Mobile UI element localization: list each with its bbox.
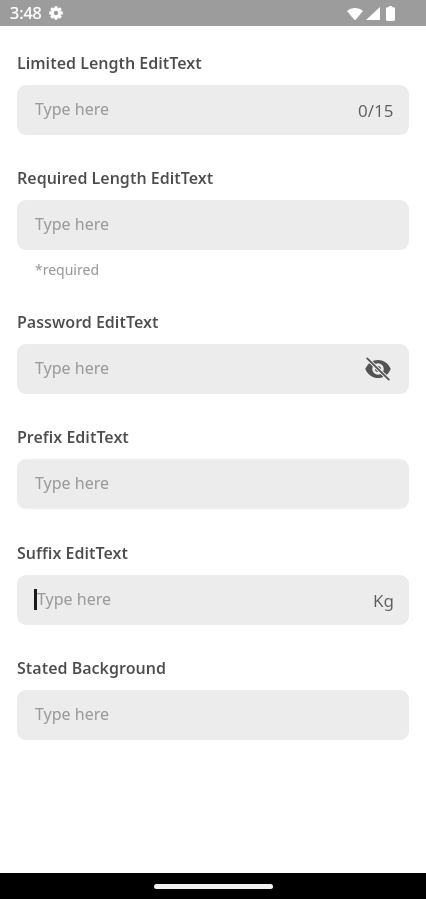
staticText: Required Length EditText (17, 167, 214, 189)
staticText: Stated Background (17, 657, 166, 679)
staticText: Type here (35, 357, 109, 379)
staticText: Type here (37, 588, 111, 610)
button[interactable]: Type here (17, 85, 409, 135)
button[interactable]: Show password (364, 355, 392, 383)
button[interactable]: Type here (17, 575, 409, 625)
button[interactable]: Type here (17, 690, 409, 740)
button[interactable]: Type here (17, 459, 409, 509)
staticText: Kg (373, 589, 394, 612)
staticText: 3:48 (10, 2, 42, 24)
staticText: Type here (35, 472, 109, 494)
staticText: Type here (35, 98, 109, 120)
button[interactable]: Type here (17, 344, 409, 394)
staticText: Type here (35, 703, 109, 725)
staticText: Prefix EditText (17, 426, 129, 448)
staticText: Limited Length EditText (17, 52, 202, 74)
staticText: Type here (35, 213, 109, 235)
staticText: Password EditText (17, 311, 159, 333)
staticText: 0/15 (358, 99, 394, 122)
staticText: *required (35, 260, 99, 279)
button[interactable]: Type here (17, 200, 409, 250)
staticText: Suffix EditText (17, 542, 128, 564)
